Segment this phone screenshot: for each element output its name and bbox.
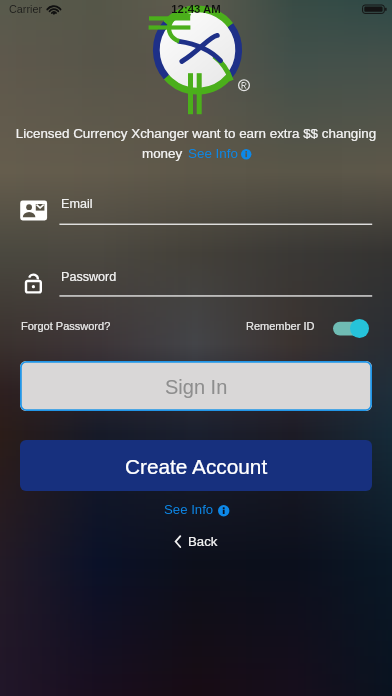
button[interactable]: Sign In bbox=[20, 361, 372, 411]
staticText: Password bbox=[61, 270, 117, 284]
staticText: See Info bbox=[164, 502, 214, 517]
staticText: Remember ID bbox=[246, 320, 315, 332]
staticText: Email bbox=[61, 197, 93, 211]
staticText: See Info bbox=[188, 146, 238, 161]
staticText: money bbox=[142, 146, 183, 161]
staticText: Forgot Password? bbox=[21, 320, 111, 332]
staticText: Sign In bbox=[165, 376, 228, 398]
button[interactable]: Back bbox=[170, 532, 222, 551]
button[interactable]: Remember ID bbox=[333, 319, 370, 338]
staticText: Create Account bbox=[125, 455, 268, 478]
staticText: Back bbox=[188, 534, 218, 549]
button[interactable]: Forgot Password? bbox=[21, 320, 111, 332]
staticText: Carrier bbox=[9, 3, 42, 15]
staticText: Licensed Currency Xchanger want to earn … bbox=[0, 126, 392, 141]
button[interactable]: See Info bbox=[183, 146, 251, 161]
button[interactable]: See Info bbox=[162, 502, 231, 517]
staticText: 12:43 AM bbox=[0, 3, 392, 16]
button[interactable]: Create Account bbox=[20, 440, 372, 491]
